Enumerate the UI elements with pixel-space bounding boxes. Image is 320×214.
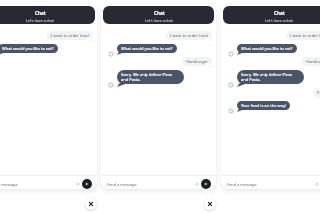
staticText: Sorry. We only deliver Pizza and Pasta. bbox=[121, 72, 180, 82]
staticText: Your food is on the way! bbox=[241, 103, 286, 108]
button[interactable]: Hamburger bbox=[182, 57, 212, 66]
staticText: I want to order food bbox=[51, 33, 89, 38]
staticText: Chat bbox=[35, 10, 46, 16]
button[interactable]: What would you like to eat? bbox=[0, 44, 58, 53]
staticText: Let's have a chat bbox=[26, 18, 54, 23]
staticText: Send a message bbox=[107, 182, 137, 187]
button[interactable]: Sorry. We only deliver Pizza and Pasta. bbox=[117, 70, 184, 84]
button[interactable]: Chat bbox=[0, 6, 95, 24]
button[interactable]: Pasta bbox=[313, 88, 320, 97]
staticText: What would you like to eat? bbox=[121, 46, 173, 51]
button[interactable]: Chat bbox=[223, 6, 320, 24]
staticText: Sorry. We only deliver Pizza and Pasta. bbox=[241, 72, 300, 82]
button[interactable]: What would you like to eat? bbox=[237, 44, 297, 53]
staticText: Chat bbox=[274, 10, 285, 16]
staticText: Let's have a chat bbox=[265, 18, 293, 23]
button[interactable]: Attach file bbox=[314, 181, 320, 187]
button[interactable]: Attach file bbox=[194, 181, 200, 187]
button[interactable]: I want to order food bbox=[47, 31, 93, 40]
button[interactable]: Send bbox=[201, 179, 211, 189]
staticText: Let's have a chat bbox=[145, 18, 173, 23]
button[interactable]: Hamburger bbox=[302, 57, 320, 66]
staticText: What would you like to eat? bbox=[2, 46, 54, 51]
button[interactable]: Close chat bbox=[85, 198, 97, 210]
staticText: Hamburger bbox=[306, 59, 320, 64]
button[interactable]: Your food is on the way! bbox=[237, 101, 290, 110]
button[interactable]: I want to order food bbox=[166, 31, 212, 40]
staticText: I want to order food bbox=[170, 33, 208, 38]
staticText: Chat bbox=[154, 10, 165, 16]
button[interactable]: Send bbox=[82, 179, 92, 189]
staticText: Send a message bbox=[227, 182, 257, 187]
staticText: Pasta bbox=[317, 90, 320, 95]
button[interactable]: Close chat bbox=[204, 198, 216, 210]
staticText: What would you like to eat? bbox=[241, 46, 293, 51]
button[interactable]: Sorry. We only deliver Pizza and Pasta. bbox=[237, 70, 304, 84]
button[interactable]: Chat bbox=[103, 6, 214, 24]
button[interactable]: Attach file bbox=[75, 181, 81, 187]
button[interactable]: What would you like to eat? bbox=[117, 44, 177, 53]
staticText: I want to order food bbox=[290, 33, 320, 38]
staticText: Send a message bbox=[0, 182, 18, 187]
button[interactable]: I want to order food bbox=[286, 31, 320, 40]
staticText: Hamburger bbox=[186, 59, 208, 64]
